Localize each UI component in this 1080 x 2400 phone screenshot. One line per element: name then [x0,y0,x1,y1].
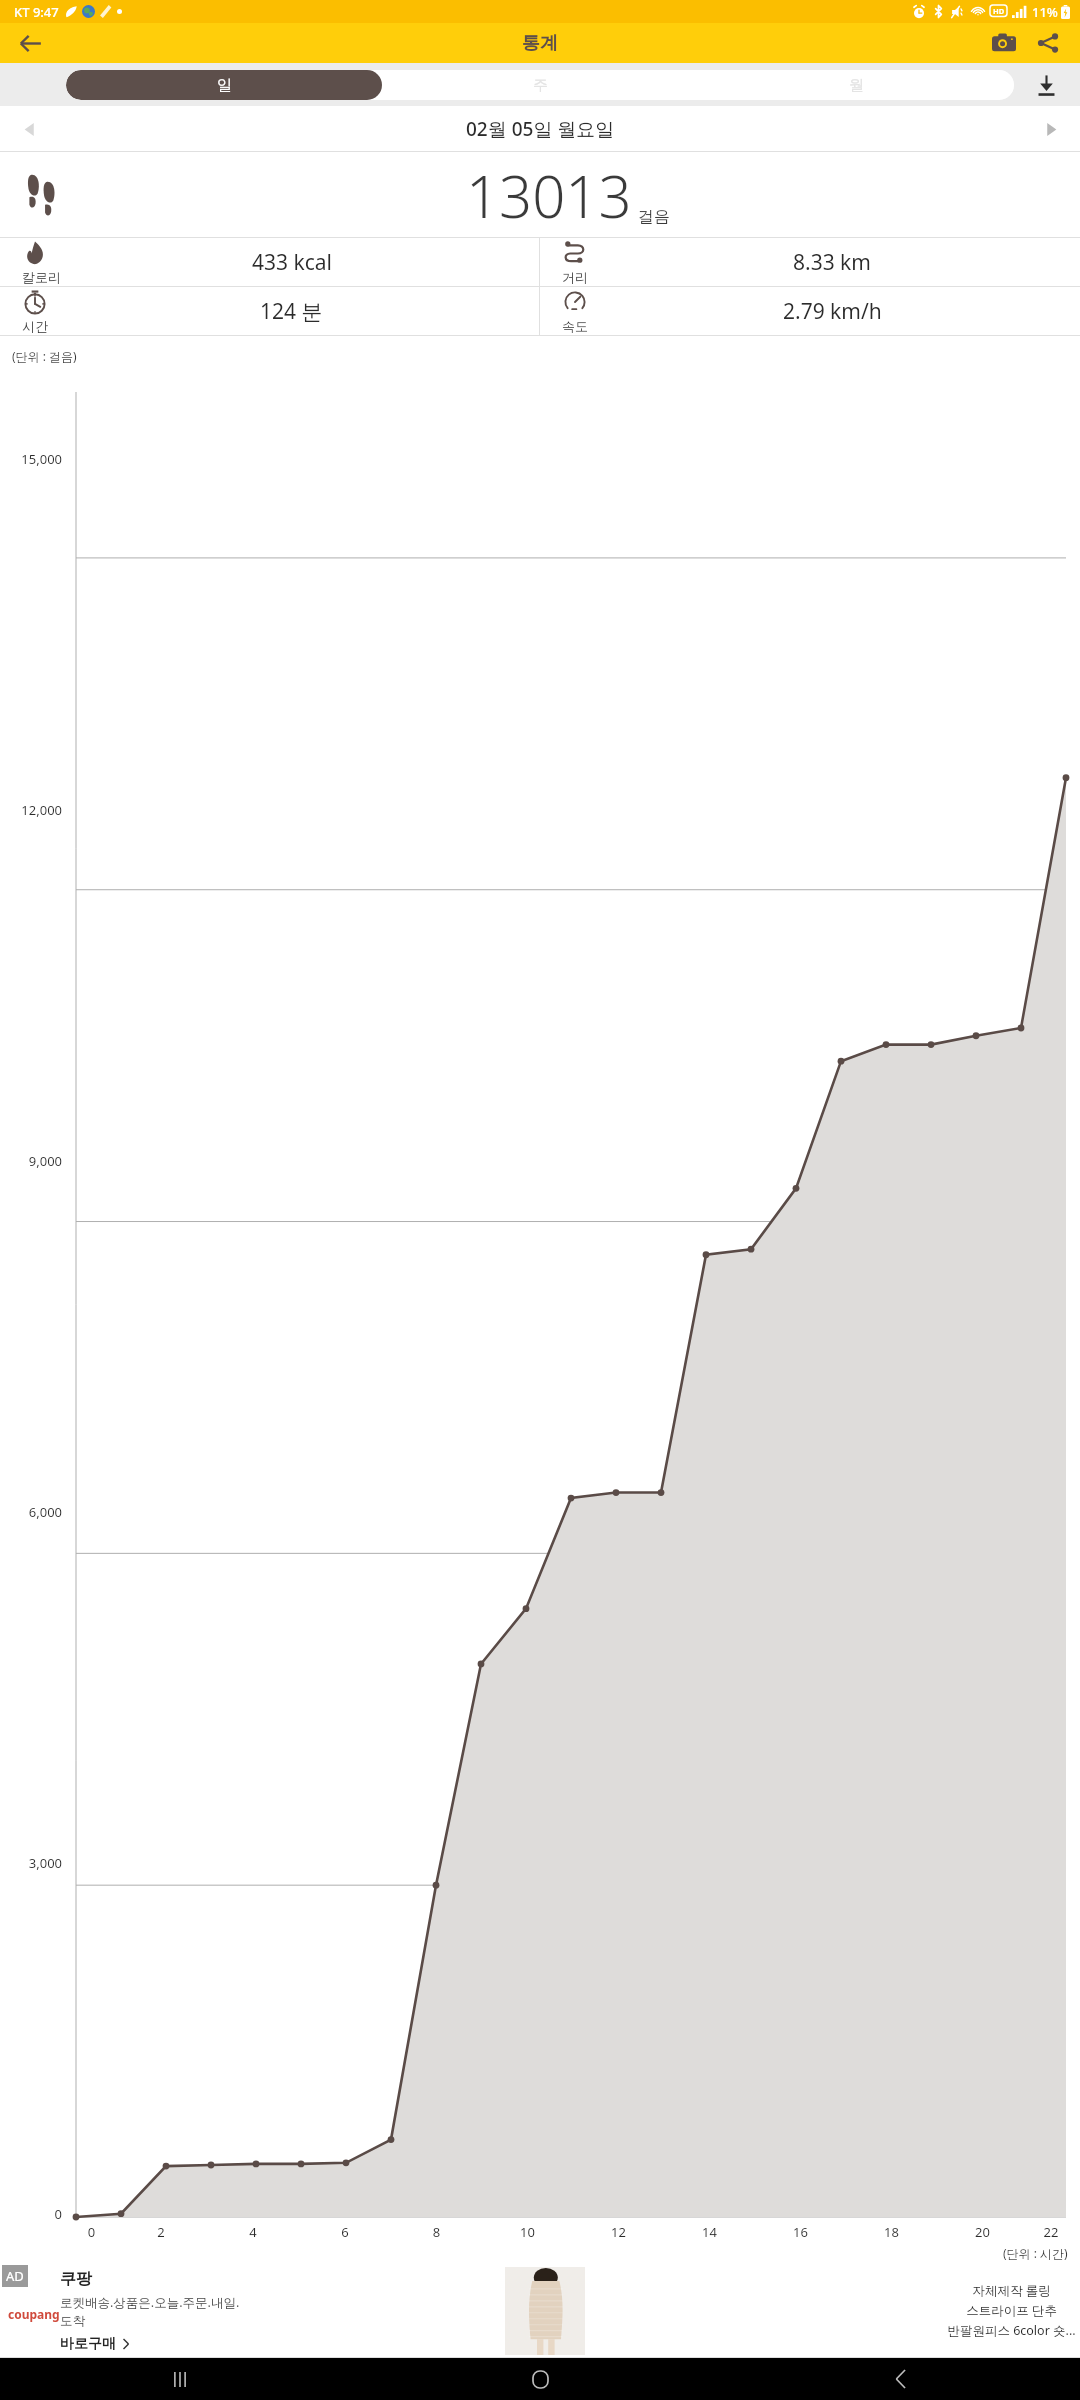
staticText: 433 kcal [252,248,332,277]
button[interactable]: Back [8,23,52,63]
staticText: 12,000 [0,801,62,819]
staticText: 걸음 [638,207,670,227]
staticText: 6,000 [0,1503,62,1521]
button[interactable]: AD [0,2263,1080,2358]
staticText: 15,000 [0,450,62,468]
button[interactable]: Recents [0,2358,360,2400]
staticText: HD [993,6,1005,16]
staticText: 0 [0,2205,62,2223]
staticText: 18 [846,2223,937,2241]
staticText: 4 [207,2223,299,2241]
staticText: 통계 [522,32,558,55]
staticText: 쿠팡 [60,2269,92,2289]
staticText: 11% [1032,3,1058,21]
staticText: 14 [664,2223,755,2241]
staticText: 바로구매 [60,2335,116,2353]
staticText: 월 [849,76,864,95]
staticText: 124 분 [260,297,323,326]
staticText: coupang [8,2306,60,2322]
staticText: 시간 [22,318,48,334]
staticText: 2 [115,2223,207,2241]
button[interactable]: 시간 [0,287,539,335]
staticText: 20 [937,2223,1028,2241]
staticText: 로켓배송.상품은.오늘.주문.내일. 도착 [60,2294,240,2329]
button[interactable]: Previous day [10,109,50,149]
staticText: 12 [573,2223,664,2241]
staticText: 일 [217,76,232,95]
staticText: 2.79 km/h [783,297,882,326]
staticText: 거리 [562,269,588,285]
staticText: 칼로리 [22,269,61,285]
staticText: 6 [299,2223,391,2241]
staticText: (단위 : 시간) [1003,2245,1068,2261]
staticText: 3,000 [0,1854,62,1872]
staticText: 8.33 km [793,248,871,277]
staticText: AD [6,2267,24,2285]
staticText: 0 [68,2223,115,2241]
button[interactable]: Share [1026,23,1070,63]
button[interactable]: Next day [1030,109,1070,149]
staticText: 16 [755,2223,846,2241]
staticText: 13013 [466,156,632,235]
staticText: 주 [533,76,548,95]
button[interactable]: 칼로리 [0,238,539,286]
staticText: (단위 : 걸음) [12,348,77,364]
button[interactable]: Camera [982,23,1026,63]
staticText: 22 [1028,2223,1074,2241]
button[interactable]: Download [1026,65,1066,105]
staticText: 9,000 [0,1152,62,1170]
staticText: 자체제작 롤링 스트라이프 단추 반팔원피스 6color 숏... [947,2282,1076,2339]
button[interactable]: 일 [66,70,382,100]
button[interactable]: 거리 [540,238,1080,286]
staticText: KT 9:47 [14,3,59,21]
staticText: 속도 [562,318,588,334]
button[interactable]: Home [360,2358,720,2400]
button[interactable]: Back [720,2358,1080,2400]
staticText: 02월 05일 월요일 [466,116,615,142]
button[interactable]: 속도 [540,287,1080,335]
staticText: 10 [482,2223,573,2241]
staticText: 8 [391,2223,482,2241]
